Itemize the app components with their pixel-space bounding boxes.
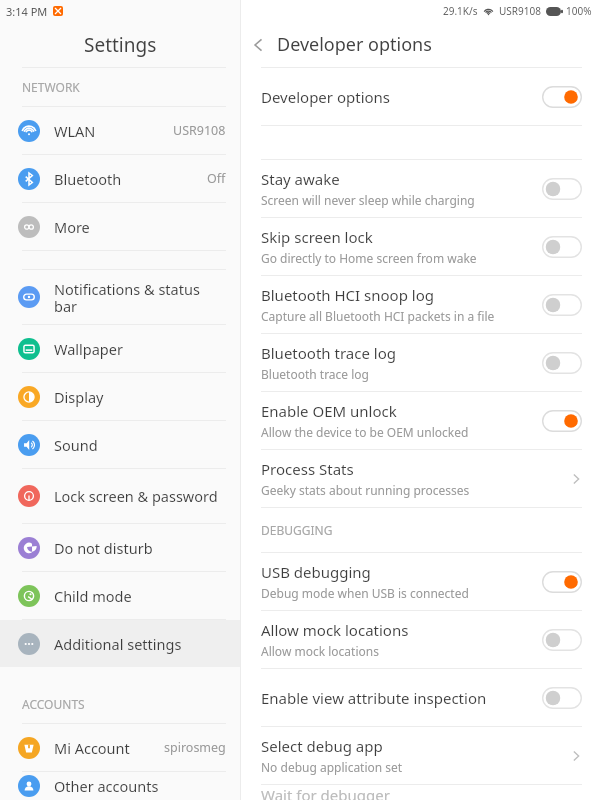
button[interactable]: Sound [0,421,240,468]
staticText: Skip screen lock [261,227,373,247]
button[interactable]: Stay awake [241,160,600,217]
staticText: Allow the device to be OEM unlocked [261,424,469,440]
staticText: Settings [84,32,157,58]
staticText: Allow mock locations [261,643,379,659]
staticText: Other accounts [54,776,159,796]
button[interactable]: On [542,571,582,593]
staticText: DEBUGGING [261,522,333,538]
staticText: Wallpaper [54,339,123,359]
staticText: Bluetooth [54,169,122,189]
staticText: Go directly to Home screen from wake [261,250,477,266]
button[interactable]: Skip screen lock [241,218,600,275]
staticText: Debug mode when USB is connected [261,585,469,601]
button[interactable]: Wait for debugger [241,785,600,800]
staticText: USR9108 [173,122,226,139]
button[interactable]: Additional settings [0,620,240,667]
button[interactable]: Display [0,373,240,420]
button[interactable]: Lock screen & password [0,469,240,523]
staticText: Notifications & status bar [54,279,226,316]
staticText: Child mode [54,586,132,606]
staticText: spirosmeg [164,739,226,756]
button[interactable]: Process Stats [241,450,600,507]
staticText: Bluetooth HCI snoop log [261,285,434,305]
button[interactable]: Bluetooth [0,155,240,202]
staticText: Screen will never sleep while charging [261,192,475,208]
button[interactable]: Notifications & status bar [0,270,240,324]
staticText: Do not disturb [54,538,153,558]
button[interactable]: USB debugging [241,553,600,610]
staticText: Wait for debugger [261,785,390,800]
button[interactable]: Other accounts [0,772,240,800]
button[interactable]: Off [542,687,582,709]
staticText: ACCOUNTS [22,696,85,712]
button[interactable]: Enable OEM unlock [241,392,600,449]
button[interactable]: Select debug app [241,727,600,784]
staticText: Select debug app [261,736,383,756]
staticText: 100% [566,4,592,18]
staticText: 29.1K/s [443,4,478,18]
button[interactable]: Back [241,27,277,63]
staticText: Capture all Bluetooth HCI packets in a f… [261,308,495,324]
staticText: Off [207,170,226,187]
staticText: 3:14 PM [6,4,48,19]
button[interactable]: Enable view attribute inspection [241,669,600,726]
staticText: Allow mock locations [261,620,409,640]
staticText: Display [54,387,104,407]
button[interactable]: Off [542,352,582,374]
staticText: Developer options [277,32,432,57]
button[interactable]: On [542,86,582,108]
button[interactable]: More [0,203,240,250]
button[interactable]: Off [542,629,582,651]
staticText: USB debugging [261,562,371,582]
staticText: Bluetooth trace log [261,343,396,363]
staticText: NETWORK [22,79,80,95]
staticText: Additional settings [54,634,182,654]
button[interactable]: Bluetooth trace log [241,334,600,391]
staticText: WLAN [54,121,96,141]
button[interactable]: On [542,410,582,432]
button[interactable]: Off [542,178,582,200]
staticText: More [54,217,90,237]
button[interactable]: Off [542,294,582,316]
staticText: Mi Account [54,738,130,758]
staticText: Bluetooth trace log [261,366,369,382]
button[interactable]: Child mode [0,572,240,619]
button[interactable]: Off [542,236,582,258]
staticText: Process Stats [261,459,354,479]
button[interactable]: Allow mock locations [241,611,600,668]
staticText: Lock screen & password [54,486,218,506]
button[interactable]: Wallpaper [0,325,240,372]
staticText: Enable OEM unlock [261,401,397,421]
button[interactable]: Do not disturb [0,524,240,571]
button[interactable]: WLAN [0,107,240,154]
button[interactable]: Mi Account [0,724,240,771]
staticText: No debug application set [261,759,403,775]
staticText: Stay awake [261,169,340,189]
button[interactable]: Developer options [241,68,600,125]
staticText: Enable view attribute inspection [261,688,487,708]
button[interactable]: Bluetooth HCI snoop log [241,276,600,333]
staticText: Sound [54,435,98,455]
staticText: Developer options [261,87,391,107]
staticText: Geeky stats about running processes [261,482,470,498]
staticText: USR9108 [499,4,541,18]
